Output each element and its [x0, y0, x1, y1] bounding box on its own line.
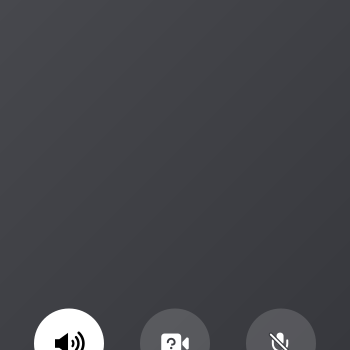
button[interactable]: Speaker on: [34, 308, 104, 350]
button[interactable]: Mute: [246, 308, 316, 350]
button[interactable]: Camera: [140, 308, 210, 350]
